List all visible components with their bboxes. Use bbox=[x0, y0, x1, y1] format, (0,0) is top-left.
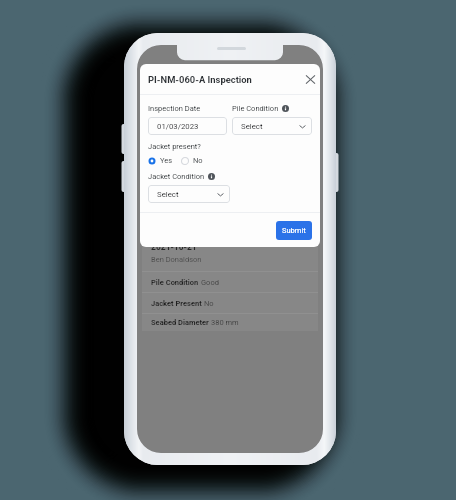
staticText: Submit bbox=[282, 226, 306, 235]
button[interactable]: No bbox=[181, 156, 203, 165]
staticText: Select bbox=[157, 190, 179, 199]
staticText: No bbox=[204, 299, 214, 308]
button[interactable]: Jacket Present bbox=[151, 293, 318, 313]
button[interactable]: Yes bbox=[148, 156, 173, 165]
button[interactable]: 01/03/2023 bbox=[148, 117, 227, 135]
staticText: Select bbox=[241, 122, 263, 131]
button[interactable]: Seabed Diameter bbox=[151, 314, 318, 331]
staticText: Jacket Condition bbox=[148, 172, 205, 181]
button[interactable]: Close bbox=[303, 72, 318, 87]
staticText: Ben Donaldson bbox=[151, 255, 202, 264]
staticText: Pile Condition bbox=[232, 104, 279, 113]
staticText: Yes bbox=[160, 156, 173, 165]
button[interactable]: Submit bbox=[276, 221, 312, 240]
button[interactable]: Pile Condition bbox=[151, 272, 318, 292]
staticText: 01/03/2023 bbox=[157, 122, 199, 131]
button[interactable]: Select bbox=[232, 117, 312, 135]
staticText: No bbox=[193, 156, 203, 165]
staticText: Jacket present? bbox=[148, 142, 201, 151]
button[interactable]: Select bbox=[148, 185, 230, 203]
staticText: Good bbox=[201, 278, 219, 287]
staticText: Seabed Diameter bbox=[151, 318, 211, 327]
staticText: Jacket Present bbox=[151, 299, 204, 308]
staticText: 380 mm bbox=[211, 318, 239, 327]
staticText: Inspection Date bbox=[148, 104, 201, 113]
staticText: 2021-10-21 bbox=[151, 242, 197, 252]
staticText: Pile Condition bbox=[151, 278, 201, 287]
staticText: PI-NM-060-A Inspection bbox=[148, 74, 252, 85]
